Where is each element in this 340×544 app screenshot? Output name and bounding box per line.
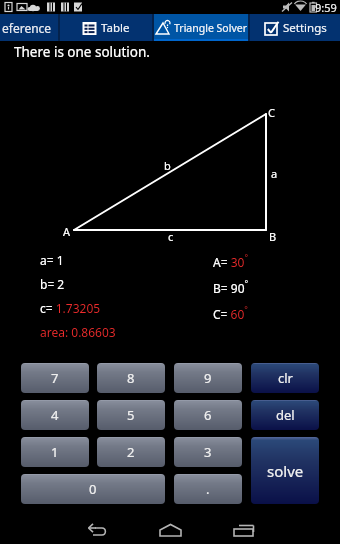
- button[interactable]: del: [251, 400, 319, 430]
- staticText: A: [63, 224, 71, 239]
- staticText: clr: [278, 369, 293, 387]
- staticText: b= 2: [40, 276, 65, 292]
- staticText: There is one solution.: [14, 43, 150, 61]
- staticText: 7: [51, 369, 59, 387]
- staticText: 5: [127, 406, 135, 424]
- button[interactable]: eference: [0, 14, 58, 41]
- staticText: area: 0.86603: [40, 324, 116, 340]
- staticText: 4: [51, 406, 59, 424]
- button[interactable]: 2: [97, 437, 165, 467]
- staticText: 0: [89, 480, 97, 498]
- staticText: a= 1: [40, 252, 64, 268]
- staticText: 9: [204, 369, 212, 387]
- button[interactable]: Recent apps: [216, 512, 272, 544]
- staticText: 6: [204, 406, 212, 424]
- button[interactable]: Back: [70, 512, 126, 544]
- button[interactable]: 1: [21, 437, 89, 467]
- button[interactable]: 7: [21, 363, 89, 393]
- staticText: B= 90°: [213, 278, 249, 296]
- staticText: .: [206, 480, 210, 498]
- button[interactable]: Triangle Solver: [154, 14, 248, 41]
- staticText: 3: [204, 443, 212, 461]
- button[interactable]: 6: [174, 400, 242, 430]
- staticText: C: [268, 105, 275, 120]
- staticText: B: [269, 229, 277, 244]
- staticText: A= 30°: [213, 252, 249, 270]
- button[interactable]: clr: [251, 363, 319, 393]
- button[interactable]: solve: [251, 437, 319, 504]
- staticText: 9:59: [315, 0, 337, 14]
- staticText: Settings: [283, 20, 327, 36]
- staticText: 1: [51, 443, 59, 461]
- staticText: solve: [267, 461, 304, 481]
- staticText: c= 1.73205: [40, 300, 101, 316]
- button[interactable]: Settings: [250, 14, 340, 41]
- button[interactable]: 5: [97, 400, 165, 430]
- staticText: c: [168, 229, 174, 244]
- staticText: Triangle Solver: [174, 21, 247, 35]
- button[interactable]: 8: [97, 363, 165, 393]
- button[interactable]: 3: [174, 437, 242, 467]
- button[interactable]: Table: [60, 14, 152, 41]
- button[interactable]: .: [174, 474, 242, 504]
- button[interactable]: 9: [174, 363, 242, 393]
- staticText: 2: [127, 443, 135, 461]
- staticText: b: [164, 158, 171, 173]
- staticText: 8: [127, 369, 135, 387]
- staticText: del: [276, 406, 295, 424]
- staticText: C= 60°: [213, 304, 248, 322]
- staticText: a: [271, 166, 278, 181]
- staticText: eference: [2, 20, 52, 36]
- staticText: Table: [101, 20, 130, 36]
- button[interactable]: 4: [21, 400, 89, 430]
- button[interactable]: 0: [21, 474, 165, 504]
- button[interactable]: Home: [142, 512, 198, 544]
